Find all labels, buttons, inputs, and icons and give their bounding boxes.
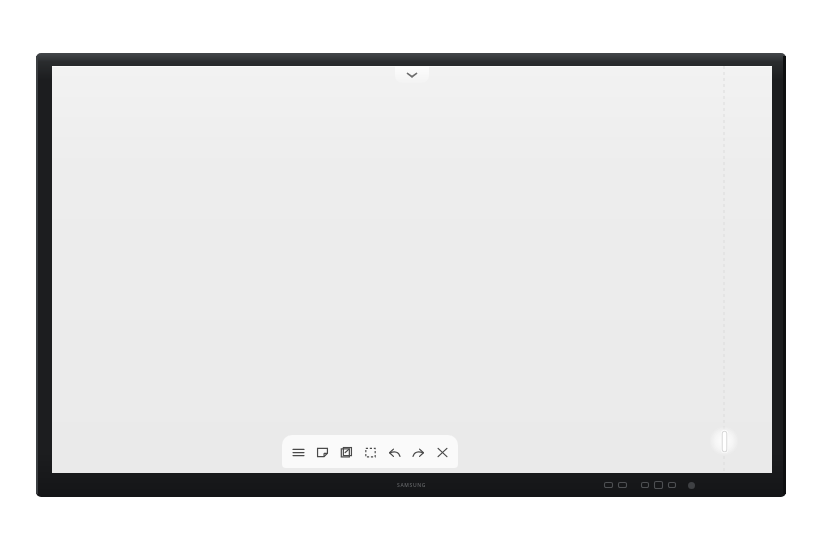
- button[interactable]: Menu: [288, 439, 308, 465]
- button[interactable]: Close: [432, 439, 452, 465]
- staticText: SAMSUNG: [397, 482, 426, 489]
- button[interactable]: Capture: [336, 439, 356, 465]
- button[interactable]: Undo: [384, 439, 404, 465]
- button[interactable]: Open menu: [395, 66, 429, 83]
- button[interactable]: Redo: [408, 439, 428, 465]
- button[interactable]: Note: [312, 439, 332, 465]
- button[interactable]: Select area: [360, 439, 380, 465]
- other: Stylus pen holder: [709, 416, 739, 466]
